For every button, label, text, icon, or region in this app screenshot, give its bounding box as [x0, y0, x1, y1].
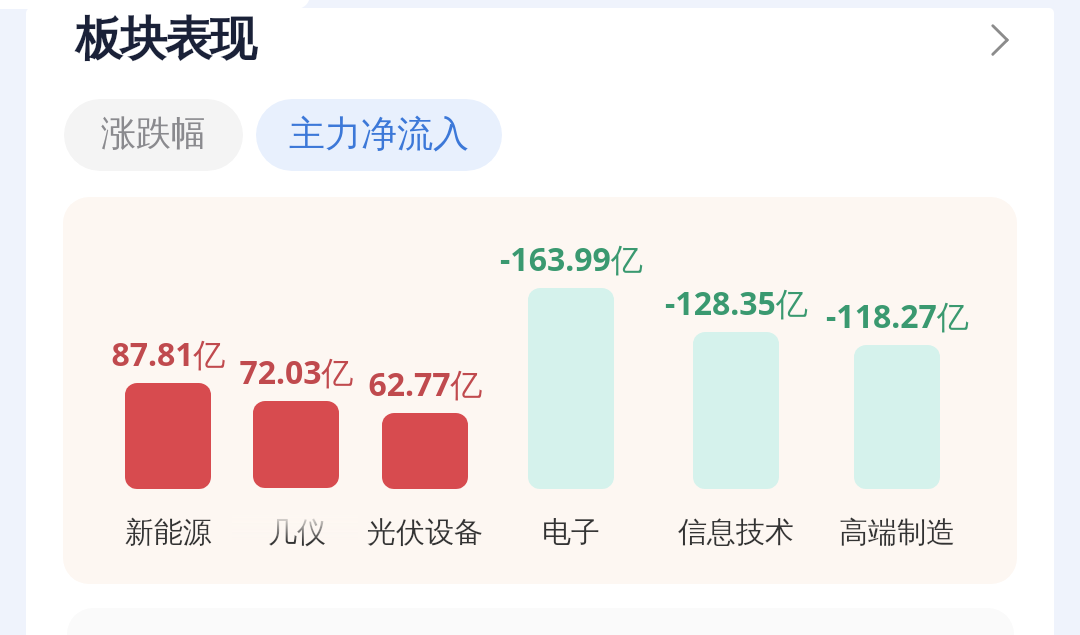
button[interactable]: 主力净流入: [256, 99, 502, 171]
staticText: 62.77亿: [368, 362, 483, 406]
staticText: 几仪: [268, 514, 326, 551]
staticText: -128.35亿: [665, 281, 808, 325]
staticText: -163.99亿: [500, 237, 643, 281]
button[interactable]: 涨跌幅: [64, 99, 243, 171]
button[interactable]: 新能源: [105, 225, 231, 550]
button[interactable]: 光伏设备: [362, 225, 488, 550]
button[interactable]: 72.03: [233, 225, 359, 550]
staticText: 光伏设备: [367, 514, 483, 551]
staticText: -118.27亿: [826, 294, 969, 338]
button[interactable]: 电子: [508, 225, 634, 550]
staticText: 信息技术: [678, 514, 794, 551]
staticText: 新能源: [125, 514, 212, 551]
staticText: 板块表现: [75, 10, 255, 69]
button[interactable]: 板块表现: [63, 8, 293, 76]
staticText: 高端制造: [839, 514, 955, 551]
button[interactable]: More: [972, 12, 1028, 68]
staticText: 87.81亿: [111, 332, 226, 376]
button[interactable]: 信息技术: [673, 225, 799, 550]
staticText: 涨跌幅: [101, 111, 206, 155]
button[interactable]: 高端制造: [834, 225, 960, 550]
staticText: 主力净流入: [289, 111, 469, 156]
staticText: 72.03亿: [239, 350, 354, 394]
staticText: 电子: [542, 514, 600, 551]
